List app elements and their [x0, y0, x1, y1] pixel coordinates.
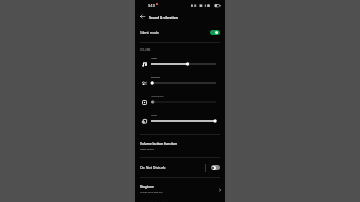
button[interactable]: Do Not Disturb [135, 158, 204, 177]
staticText: Silent mode [140, 30, 159, 35]
staticText: Do Not Disturb [140, 165, 166, 170]
staticText: Ringtone [151, 76, 160, 79]
button[interactable]: Media volume [149, 60, 218, 68]
button[interactable]: Ringtone [135, 178, 225, 199]
staticText: Media [151, 57, 158, 60]
staticText: Mi Stan Tik th area mO [140, 191, 163, 194]
staticText: Notifications [151, 95, 164, 98]
staticText: Volume button function [140, 142, 178, 146]
staticText: VOLUME [140, 48, 151, 51]
staticText: Media volume [140, 148, 154, 151]
button[interactable]: Notifications volume [149, 98, 218, 106]
button[interactable]: Ringtone volume [149, 79, 218, 87]
staticText: Ringtone [140, 185, 154, 189]
staticText: Alarm [151, 114, 157, 117]
button[interactable]: Alarm volume [149, 117, 218, 125]
button[interactable]: Do Not Disturb toggle [207, 158, 223, 177]
button[interactable]: Back [138, 12, 147, 21]
button[interactable]: Silent mode [135, 25, 225, 40]
staticText: 3:13 [148, 3, 155, 8]
button[interactable]: Volume button function [135, 135, 225, 157]
staticText: Sound & vibration [149, 15, 178, 19]
